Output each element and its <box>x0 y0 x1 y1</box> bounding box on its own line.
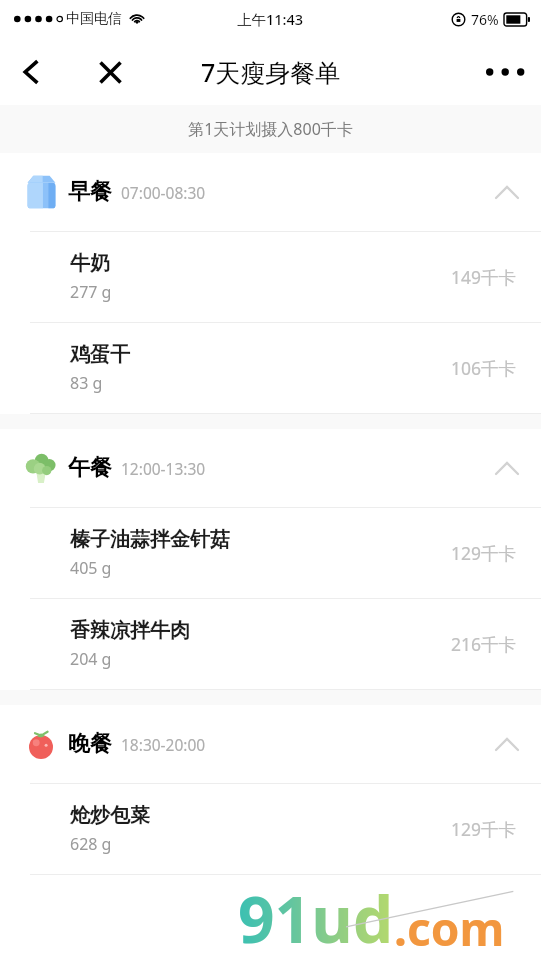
staticText: 129千卡 <box>451 817 517 841</box>
button[interactable]: Back <box>6 47 56 97</box>
staticText: 早餐 <box>68 178 112 206</box>
staticText: 第1天计划摄入800千卡 <box>188 118 353 140</box>
staticText: 216千卡 <box>451 632 517 656</box>
button[interactable]: 晚餐 <box>0 705 541 783</box>
staticText: 午餐 <box>68 454 112 482</box>
staticText: 07:00-08:30 <box>121 182 206 203</box>
staticText: 上午11:43 <box>237 9 304 29</box>
staticText: 炝炒包菜 <box>70 803 150 828</box>
button[interactable]: 鸡蛋干 <box>0 323 541 413</box>
staticText: 106千卡 <box>451 356 517 380</box>
staticText: 628 g <box>70 833 112 855</box>
staticText: 12:00-13:30 <box>121 458 206 479</box>
staticText: 香辣凉拌牛肉 <box>70 618 190 643</box>
staticText: .com <box>394 897 505 960</box>
staticText: 129千卡 <box>451 541 517 565</box>
staticText: 牛奶 <box>70 251 110 276</box>
staticText: 鸡蛋干 <box>70 342 130 367</box>
staticText: 204 g <box>70 648 112 670</box>
button[interactable]: 午餐 <box>0 429 541 507</box>
staticText: 晚餐 <box>68 730 112 758</box>
button[interactable]: 炝炒包菜 <box>0 784 541 874</box>
staticText: 榛子油蒜拌金针菇 <box>70 527 230 552</box>
button[interactable]: Close <box>84 46 136 98</box>
staticText: 405 g <box>70 557 112 579</box>
staticText: 83 g <box>70 372 103 394</box>
button[interactable]: 牛奶 <box>0 232 541 322</box>
staticText: 76% <box>471 10 499 29</box>
staticText: 7天瘦身餐单 <box>201 55 341 89</box>
staticText: 18:30-20:00 <box>121 734 206 755</box>
button[interactable]: 早餐 <box>0 153 541 231</box>
staticText: 277 g <box>70 281 112 303</box>
staticText: 中国电信 <box>66 10 122 28</box>
button[interactable]: 榛子油蒜拌金针菇 <box>0 508 541 598</box>
staticText: 91ud <box>238 875 394 960</box>
button[interactable]: 香辣凉拌牛肉 <box>0 599 541 689</box>
staticText: 149千卡 <box>451 265 517 289</box>
button[interactable]: More options <box>477 44 533 100</box>
